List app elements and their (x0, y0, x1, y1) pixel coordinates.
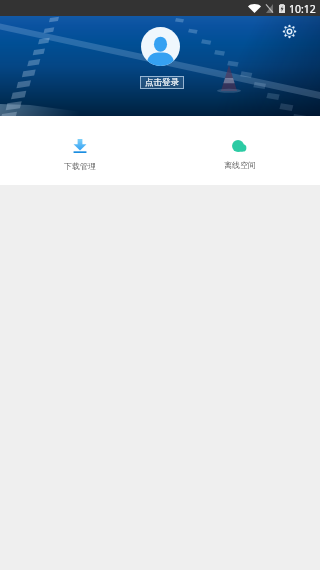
button[interactable]: 点击登录 (140, 76, 184, 89)
staticText: 下载管理 (64, 161, 96, 171)
button[interactable]: Settings (279, 21, 299, 41)
staticText: 10:12 (289, 2, 316, 16)
staticText: 离线空间 (224, 160, 256, 170)
button[interactable]: 离线空间 (160, 132, 320, 170)
button[interactable]: 下载管理 (0, 131, 160, 171)
staticText: 点击登录 (145, 77, 179, 88)
